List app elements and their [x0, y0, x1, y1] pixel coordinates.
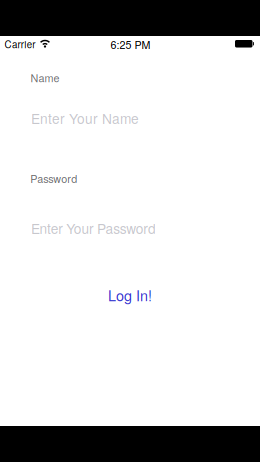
staticText: Enter Your Name	[31, 108, 139, 128]
button[interactable]: Enter Your Password	[31, 216, 229, 240]
staticText: Enter Your Password	[31, 218, 156, 238]
button[interactable]: Log In!	[90, 284, 170, 306]
staticText: 6:25 PM	[110, 37, 150, 52]
staticText: Password	[30, 171, 77, 186]
staticText: Log In!	[108, 285, 152, 305]
button[interactable]: Enter Your Name	[31, 106, 229, 130]
staticText: Name	[31, 70, 60, 85]
staticText: Carrier	[4, 37, 35, 51]
